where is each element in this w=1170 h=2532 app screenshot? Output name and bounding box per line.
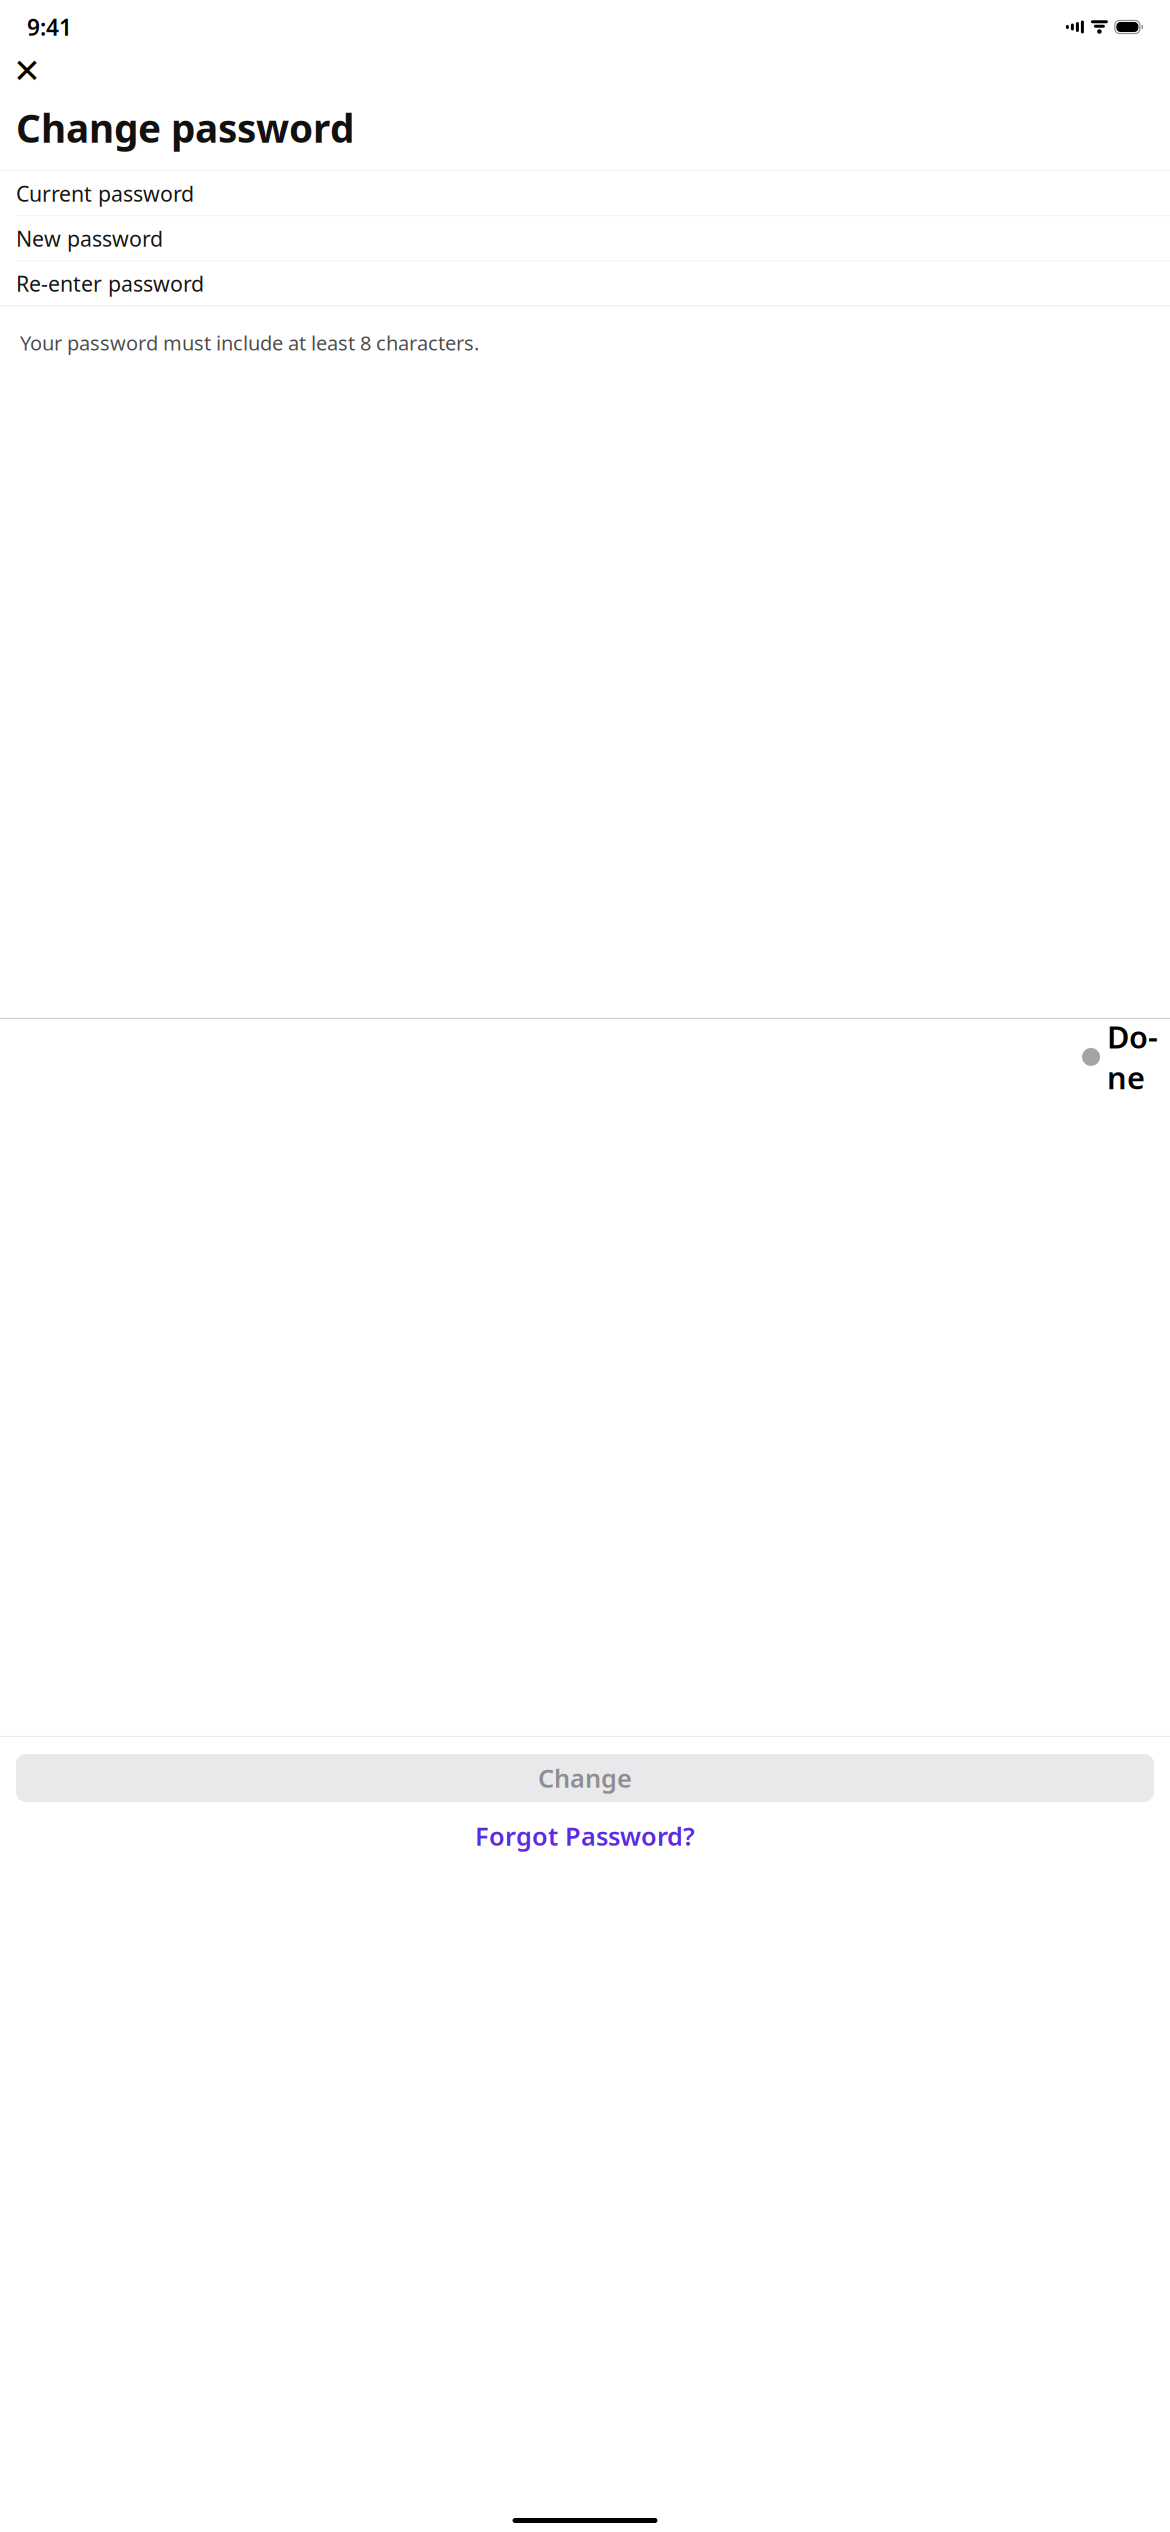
staticText: 9:41	[27, 12, 72, 42]
button[interactable]: Current password	[0, 171, 1170, 215]
button[interactable]: Done	[1082, 1040, 1158, 1074]
staticText: Done	[1107, 1016, 1158, 1098]
staticText: Change	[538, 1761, 632, 1795]
staticText: Your password must include at least 8 ch…	[20, 329, 479, 356]
staticText: Current password	[16, 179, 194, 207]
button[interactable]: Forgot Password?	[16, 1816, 1154, 1856]
staticText: Re-enter password	[16, 269, 204, 297]
button[interactable]: New password	[0, 216, 1170, 260]
button[interactable]: Change	[16, 1754, 1154, 1802]
staticText: Forgot Password?	[475, 1819, 695, 1853]
staticText: ✕	[13, 52, 41, 90]
button[interactable]: Close	[4, 49, 50, 93]
staticText: New password	[16, 224, 163, 252]
staticText: Change password	[16, 102, 354, 153]
button[interactable]: Re-enter password	[0, 261, 1170, 305]
